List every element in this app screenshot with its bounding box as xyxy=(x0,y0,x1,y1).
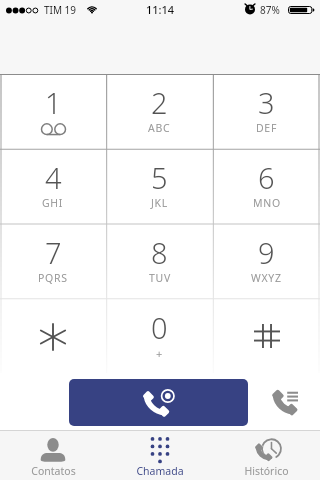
staticText: ABC xyxy=(148,121,171,135)
staticText: Chamada xyxy=(136,464,184,478)
button[interactable]: Chamada xyxy=(106,431,213,480)
button[interactable]: 2 xyxy=(106,74,213,149)
button[interactable]: Call xyxy=(69,379,248,426)
staticText: 6 xyxy=(258,158,275,197)
staticText: WXYZ xyxy=(251,271,282,285)
staticText: TUV xyxy=(149,271,171,285)
staticText: 5 xyxy=(151,158,168,197)
staticText: + xyxy=(156,346,163,361)
staticText: 11:14 xyxy=(146,2,175,17)
button[interactable]: 0 xyxy=(106,299,213,373)
staticText: PQRS xyxy=(38,271,68,285)
button[interactable]: Histórico xyxy=(213,431,320,480)
button[interactable]: Call log xyxy=(250,379,320,426)
button[interactable] xyxy=(0,299,106,373)
staticText: GHI xyxy=(42,196,64,210)
button[interactable]: 3 xyxy=(213,74,320,149)
staticText: 87% xyxy=(260,3,280,17)
staticText: Contatos xyxy=(31,464,76,478)
staticText: 0 xyxy=(151,308,168,347)
button[interactable]: 9 xyxy=(213,224,320,299)
staticText: 9 xyxy=(258,233,275,272)
staticText: 4 xyxy=(45,158,62,197)
staticText: JKL xyxy=(151,196,168,210)
staticText: MNO xyxy=(253,196,281,210)
button[interactable]: Contatos xyxy=(0,431,106,480)
staticText: TIM 19 xyxy=(44,3,77,17)
staticText: 2 xyxy=(151,83,168,122)
staticText: DEF xyxy=(256,121,278,135)
button[interactable]: 8 xyxy=(106,224,213,299)
staticText: 1 xyxy=(45,83,62,122)
staticText: 3 xyxy=(258,83,275,122)
button[interactable]: 6 xyxy=(213,149,320,224)
button[interactable]: 4 xyxy=(0,149,106,224)
staticText: 8 xyxy=(151,233,168,272)
button[interactable] xyxy=(213,299,320,373)
staticText: 7 xyxy=(45,233,62,272)
button[interactable]: 7 xyxy=(0,224,106,299)
staticText: Histórico xyxy=(244,464,289,478)
button[interactable]: 1 xyxy=(0,74,106,149)
button[interactable]: 5 xyxy=(106,149,213,224)
